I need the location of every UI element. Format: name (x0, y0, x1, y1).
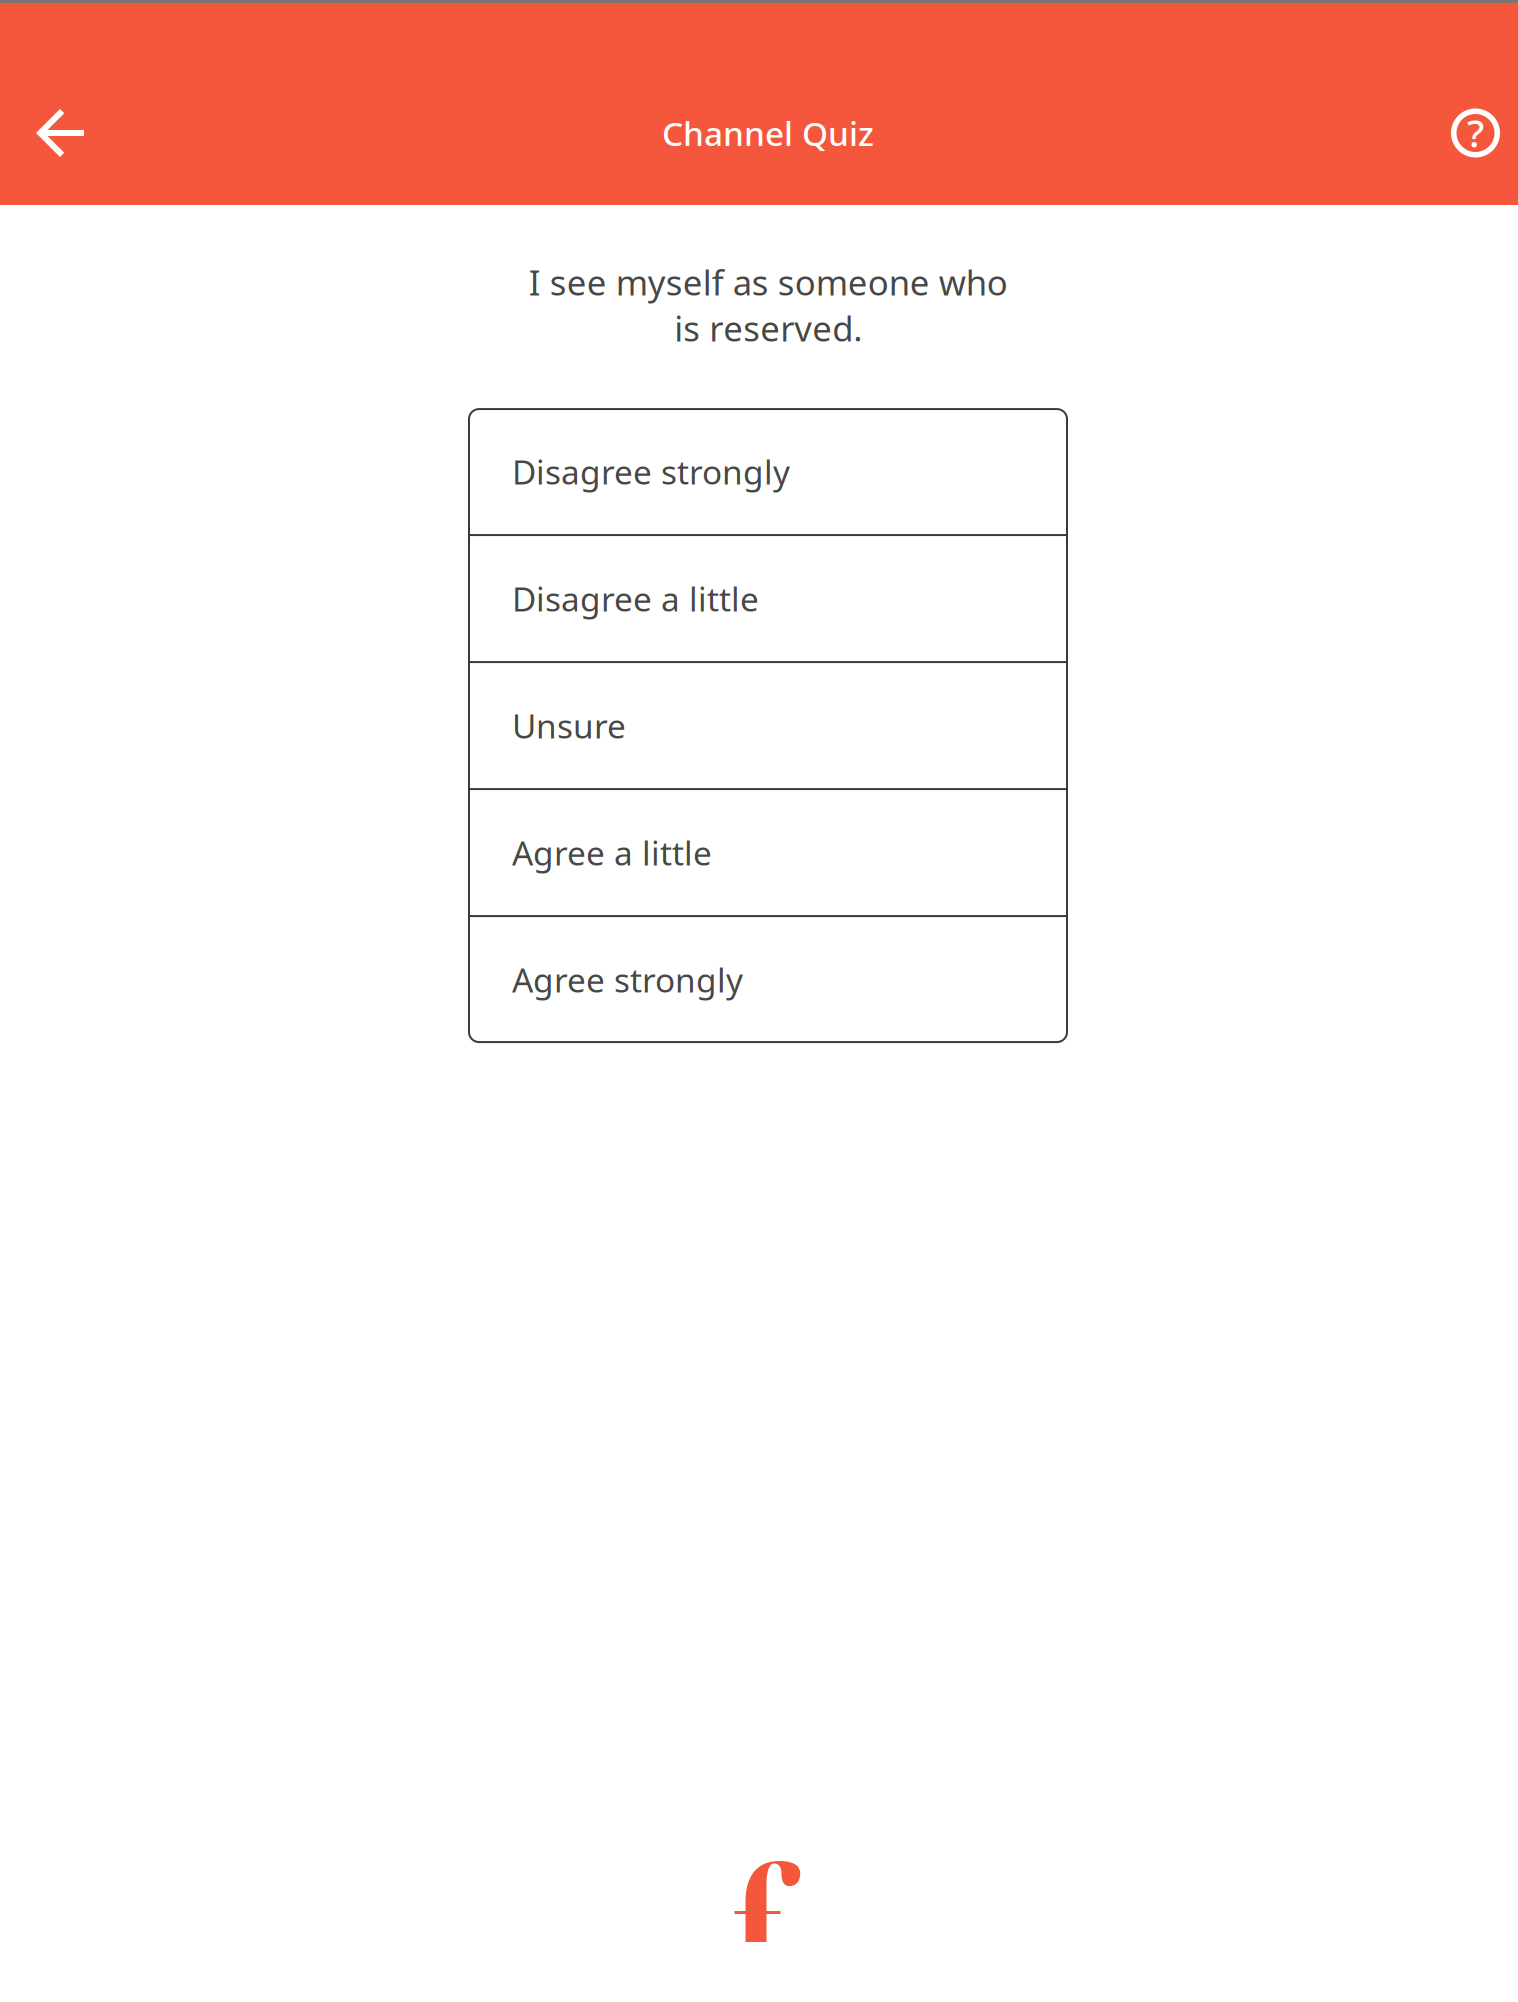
staticText: I see myself as someone who is reserved. (528, 259, 1007, 351)
staticText: Channel Quiz (662, 111, 874, 155)
button[interactable]: Help (1421, 72, 1518, 193)
staticText: Disagree strongly (512, 449, 790, 494)
staticText: Disagree a little (512, 576, 759, 621)
button[interactable]: Agree strongly (469, 917, 1067, 1042)
button[interactable]: Disagree a little (469, 536, 1067, 661)
button[interactable]: Unsure (469, 663, 1067, 788)
staticText: Unsure (512, 703, 626, 748)
staticText: Agree strongly (512, 957, 743, 1002)
button[interactable]: Back (0, 61, 120, 205)
staticText: ? (1467, 107, 1484, 158)
button[interactable]: Disagree strongly (469, 409, 1067, 534)
button[interactable]: Agree a little (469, 790, 1067, 915)
staticText: Agree a little (512, 830, 712, 875)
